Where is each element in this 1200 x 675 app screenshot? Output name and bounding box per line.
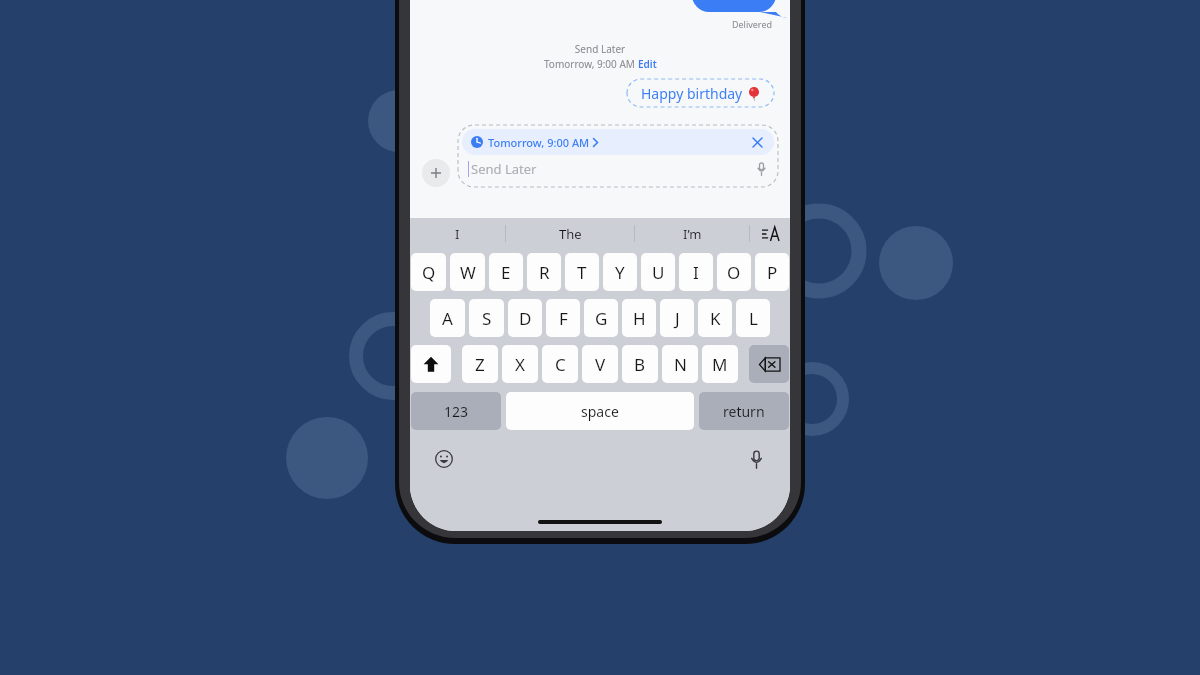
staticText: Z bbox=[475, 353, 485, 376]
staticText: Edit bbox=[638, 57, 657, 71]
button[interactable]: Dictate bbox=[752, 160, 770, 178]
button[interactable]: Backspace bbox=[749, 345, 789, 383]
button[interactable]: Send Later bbox=[462, 155, 774, 183]
staticText: M bbox=[712, 353, 728, 376]
staticText: P bbox=[767, 261, 778, 284]
button[interactable]: Edit bbox=[638, 57, 657, 71]
button[interactable]: Q bbox=[411, 253, 446, 291]
button[interactable]: Happy birthday bbox=[627, 79, 774, 107]
staticText: V bbox=[595, 353, 606, 376]
staticText: T bbox=[577, 261, 587, 284]
staticText: D bbox=[519, 307, 532, 330]
staticText: Happy birthday bbox=[641, 84, 743, 103]
staticText: Delivered bbox=[410, 18, 772, 30]
button[interactable]: M bbox=[702, 345, 738, 383]
button[interactable]: A bbox=[430, 299, 465, 337]
button[interactable]: Emoji bbox=[432, 447, 456, 471]
button[interactable]: K bbox=[698, 299, 732, 337]
button[interactable]: I’m bbox=[635, 218, 749, 249]
staticText: J bbox=[675, 307, 680, 330]
button[interactable]: I bbox=[679, 253, 713, 291]
button[interactable]: Remove schedule bbox=[749, 134, 765, 150]
button[interactable]: T bbox=[565, 253, 599, 291]
button[interactable]: E bbox=[489, 253, 523, 291]
staticText: E bbox=[501, 261, 511, 284]
staticText: Tomorrow, 9:00 AM bbox=[488, 135, 590, 150]
button[interactable]: L bbox=[736, 299, 770, 337]
button[interactable]: B bbox=[622, 345, 658, 383]
staticText: X bbox=[515, 353, 525, 376]
button[interactable]: G bbox=[584, 299, 618, 337]
staticText: H bbox=[633, 307, 646, 330]
button[interactable]: Formatting bbox=[750, 218, 790, 249]
staticText: N bbox=[674, 353, 687, 376]
button[interactable]: Y bbox=[603, 253, 637, 291]
staticText: A bbox=[442, 307, 453, 330]
button[interactable]: Z bbox=[462, 345, 498, 383]
button[interactable]: V bbox=[582, 345, 618, 383]
staticText: Y bbox=[615, 261, 625, 284]
staticText: R bbox=[539, 261, 550, 284]
staticText: K bbox=[710, 307, 721, 330]
button[interactable]: return bbox=[699, 392, 789, 430]
staticText: U bbox=[652, 261, 665, 284]
button[interactable]: 123 bbox=[411, 392, 501, 430]
staticText: Tomorrow, 9:00 AM bbox=[544, 57, 638, 71]
staticText: B bbox=[634, 353, 646, 376]
button[interactable]: O bbox=[717, 253, 751, 291]
staticText: Send Later bbox=[471, 160, 537, 178]
staticText: I bbox=[693, 261, 699, 284]
staticText: C bbox=[555, 353, 566, 376]
staticText: O bbox=[727, 261, 741, 284]
button[interactable]: N bbox=[662, 345, 698, 383]
button[interactable]: Dictation bbox=[744, 447, 768, 471]
staticText: F bbox=[559, 307, 568, 330]
staticText: 123 bbox=[444, 402, 469, 421]
staticText: G bbox=[595, 307, 608, 330]
button[interactable]: J bbox=[660, 299, 694, 337]
button[interactable]: The bbox=[506, 218, 634, 249]
staticText: Q bbox=[422, 261, 436, 284]
staticText: space bbox=[581, 402, 619, 421]
staticText: The bbox=[559, 225, 582, 243]
staticText: S bbox=[482, 307, 492, 330]
staticText: I’m bbox=[683, 225, 702, 243]
button[interactable]: Tomorrow, 9:00 AM bbox=[462, 129, 774, 155]
button[interactable]: C bbox=[542, 345, 578, 383]
staticText: Send Later bbox=[410, 42, 790, 56]
button[interactable]: X bbox=[502, 345, 538, 383]
button[interactable]: U bbox=[641, 253, 675, 291]
staticText: W bbox=[460, 261, 476, 284]
button[interactable]: P bbox=[755, 253, 789, 291]
button[interactable]: space bbox=[506, 392, 694, 430]
button[interactable]: W bbox=[450, 253, 485, 291]
staticText: return bbox=[723, 402, 765, 421]
button[interactable]: S bbox=[469, 299, 504, 337]
button[interactable]: R bbox=[527, 253, 561, 291]
staticText: I bbox=[455, 225, 460, 243]
button[interactable]: I bbox=[410, 218, 505, 249]
button[interactable]: D bbox=[508, 299, 542, 337]
staticText: L bbox=[749, 307, 758, 330]
button[interactable] bbox=[692, 0, 776, 12]
button[interactable]: Add attachment bbox=[422, 159, 450, 187]
button[interactable]: F bbox=[546, 299, 580, 337]
button[interactable]: Shift bbox=[411, 345, 451, 383]
button[interactable]: H bbox=[622, 299, 656, 337]
